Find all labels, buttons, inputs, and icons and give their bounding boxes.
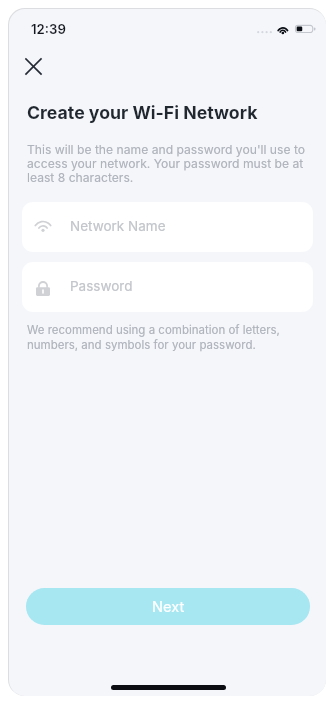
button[interactable]: Password — [22, 262, 313, 312]
button[interactable]: Network Name — [22, 202, 313, 252]
staticText: Next — [152, 598, 185, 615]
staticText: Create your Wi-Fi Network — [27, 101, 258, 123]
staticText: Password — [70, 278, 133, 294]
staticText: This will be the name and password you'l… — [27, 142, 308, 184]
staticText: 12:39 — [31, 22, 66, 37]
button[interactable]: Close — [14, 47, 53, 86]
button[interactable]: Next — [26, 588, 310, 625]
staticText: Network Name — [70, 218, 166, 234]
staticText: We recommend using a combination of lett… — [27, 322, 305, 352]
